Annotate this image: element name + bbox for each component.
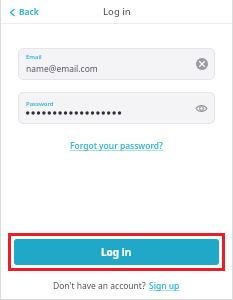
button[interactable]: Email: [18, 48, 215, 80]
button[interactable]: Clear email: [196, 58, 208, 70]
button[interactable]: Sign up: [148, 278, 181, 294]
button[interactable]: Forgot your password?: [66, 138, 167, 154]
staticText: Email: [26, 53, 42, 61]
button[interactable]: Password: [18, 92, 215, 124]
staticText: Password: [26, 100, 54, 108]
staticText: Forgot your password?: [70, 140, 163, 152]
staticText: Log in: [103, 5, 131, 18]
staticText: Sign up: [149, 280, 180, 292]
button[interactable]: Log in: [14, 239, 219, 265]
staticText: name@email.com: [26, 63, 98, 75]
button[interactable]: Show password: [195, 102, 208, 115]
button[interactable]: Back: [7, 4, 41, 20]
staticText: Don't have an account?: [53, 280, 148, 292]
staticText: Back: [19, 6, 39, 18]
staticText: Log in: [101, 245, 132, 259]
